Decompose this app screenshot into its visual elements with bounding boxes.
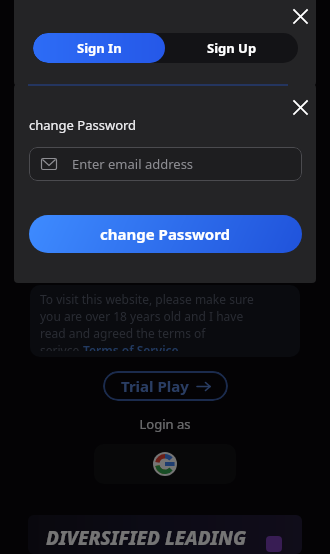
staticText: Sign In xyxy=(77,39,122,57)
staticText: Trial Play xyxy=(121,376,189,396)
button[interactable]: Sign In xyxy=(33,33,165,63)
staticText: To visit this website, please make sure xyxy=(40,291,254,307)
staticText: change Password xyxy=(29,116,137,134)
staticText: Login as xyxy=(0,415,330,433)
button[interactable]: change Password xyxy=(29,215,302,253)
staticText: Terms of Service xyxy=(83,342,179,351)
button[interactable]: Close xyxy=(288,95,312,119)
staticText: Enter email address xyxy=(72,155,194,173)
button[interactable]: Enter email address xyxy=(29,147,302,181)
button[interactable]: Terms of Service xyxy=(83,342,179,351)
button[interactable]: DIVERSIFIED LEADING xyxy=(28,515,302,554)
staticText: read and agreed the terms of xyxy=(40,325,206,341)
button[interactable]: Sign in with Google xyxy=(94,444,236,484)
button[interactable]: Trial Play xyxy=(103,371,228,401)
button[interactable]: Close xyxy=(288,4,312,28)
staticText: you are over 18 years old and I have xyxy=(40,308,244,324)
button[interactable]: Sign Up xyxy=(165,33,298,63)
staticText: Sign Up xyxy=(207,39,257,57)
staticText: DIVERSIFIED LEADING xyxy=(46,525,247,551)
staticText: serivce. xyxy=(40,342,83,351)
staticText: change Password xyxy=(100,224,231,244)
